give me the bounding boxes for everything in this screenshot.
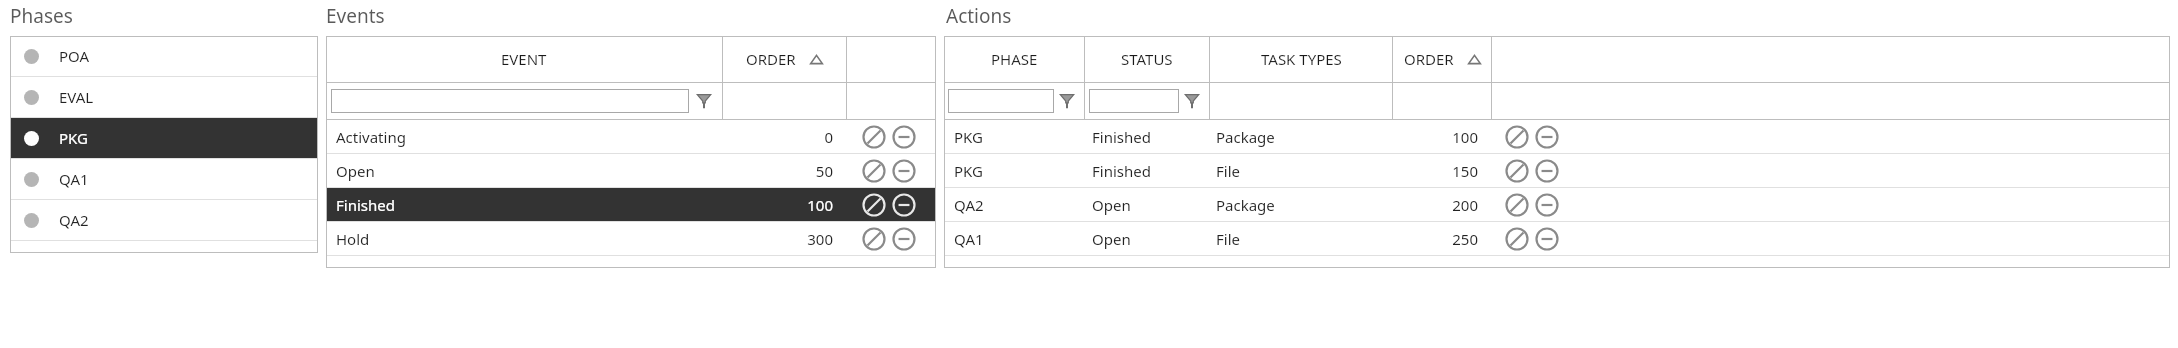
staticText: 200 <box>1390 195 1478 215</box>
button[interactable]: Edit <box>859 224 889 254</box>
staticText: File <box>1216 161 1390 181</box>
button[interactable]: ORDER <box>1393 36 1491 82</box>
staticText: EVENT <box>501 49 547 69</box>
staticText: 300 <box>722 229 833 249</box>
button[interactable]: PKG <box>10 118 318 158</box>
button[interactable]: QA1 <box>944 222 2170 255</box>
staticText: Open <box>336 161 722 181</box>
staticText: POA <box>59 46 90 66</box>
button[interactable]: Remove <box>889 122 919 152</box>
button[interactable]: Edit <box>1502 190 1532 220</box>
staticText: QA1 <box>59 169 89 189</box>
button[interactable]: Remove <box>889 156 919 186</box>
button[interactable]: Edit <box>859 190 889 220</box>
staticText: PKG <box>59 128 88 148</box>
button[interactable]: Activating <box>326 120 936 153</box>
staticText: STATUS <box>1121 49 1173 69</box>
button[interactable]: Remove <box>1532 156 1562 186</box>
staticText: 0 <box>722 127 833 147</box>
button[interactable]: Remove <box>889 224 919 254</box>
button[interactable]: PHASE <box>944 36 1084 82</box>
staticText: EVAL <box>59 87 94 107</box>
button[interactable]: QA2 <box>944 188 2170 221</box>
button[interactable] <box>1089 89 1179 113</box>
staticText: PHASE <box>991 49 1038 69</box>
staticText: Finished <box>1092 127 1208 147</box>
staticText: TASK TYPES <box>1261 49 1342 69</box>
staticText: ORDER <box>1404 49 1454 69</box>
staticText: ORDER <box>746 49 796 69</box>
staticText: File <box>1216 229 1390 249</box>
staticText: QA1 <box>954 229 1084 249</box>
button[interactable]: QA1 <box>10 159 318 199</box>
staticText: 150 <box>1390 161 1478 181</box>
button[interactable]: PKG <box>944 154 2170 187</box>
staticText: Finished <box>336 195 722 215</box>
button[interactable]: Hold <box>326 222 936 255</box>
button[interactable]: Filter <box>691 88 717 114</box>
staticText: 250 <box>1390 229 1478 249</box>
staticText: PKG <box>954 161 1084 181</box>
staticText: QA2 <box>954 195 1084 215</box>
staticText: 100 <box>722 195 833 215</box>
staticText: Hold <box>336 229 722 249</box>
staticText: Open <box>1092 195 1208 215</box>
button[interactable]: Edit <box>1502 156 1532 186</box>
button[interactable]: Filter <box>1179 88 1205 114</box>
staticText: Open <box>1092 229 1208 249</box>
button[interactable]: Edit <box>859 122 889 152</box>
button[interactable] <box>948 89 1054 113</box>
staticText: Package <box>1216 127 1390 147</box>
button[interactable]: ORDER <box>723 36 846 82</box>
button[interactable] <box>331 89 689 113</box>
button[interactable]: Edit <box>1502 122 1532 152</box>
staticText: QA2 <box>59 210 89 230</box>
button[interactable]: STATUS <box>1085 36 1209 82</box>
staticText: Package <box>1216 195 1390 215</box>
button[interactable]: Remove <box>1532 122 1562 152</box>
button[interactable]: Edit <box>859 156 889 186</box>
button[interactable]: POA <box>10 36 318 76</box>
button[interactable]: Remove <box>1532 190 1562 220</box>
staticText: Events <box>326 3 385 29</box>
button[interactable]: Open <box>326 154 936 187</box>
button[interactable]: Edit <box>1502 224 1532 254</box>
button[interactable]: QA2 <box>10 200 318 240</box>
button[interactable]: Finished <box>326 188 936 221</box>
staticText: Activating <box>336 127 722 147</box>
staticText: PKG <box>954 127 1084 147</box>
staticText: Phases <box>10 3 73 29</box>
button[interactable]: PKG <box>944 120 2170 153</box>
button[interactable]: Remove <box>889 190 919 220</box>
button[interactable]: EVENT <box>326 36 722 82</box>
staticText: 50 <box>722 161 833 181</box>
staticText: 100 <box>1390 127 1478 147</box>
button[interactable]: TASK TYPES <box>1210 36 1392 82</box>
staticText: Actions <box>946 3 1012 29</box>
button[interactable]: EVAL <box>10 77 318 117</box>
button[interactable]: Filter <box>1054 88 1080 114</box>
staticText: Finished <box>1092 161 1208 181</box>
button[interactable]: Remove <box>1532 224 1562 254</box>
